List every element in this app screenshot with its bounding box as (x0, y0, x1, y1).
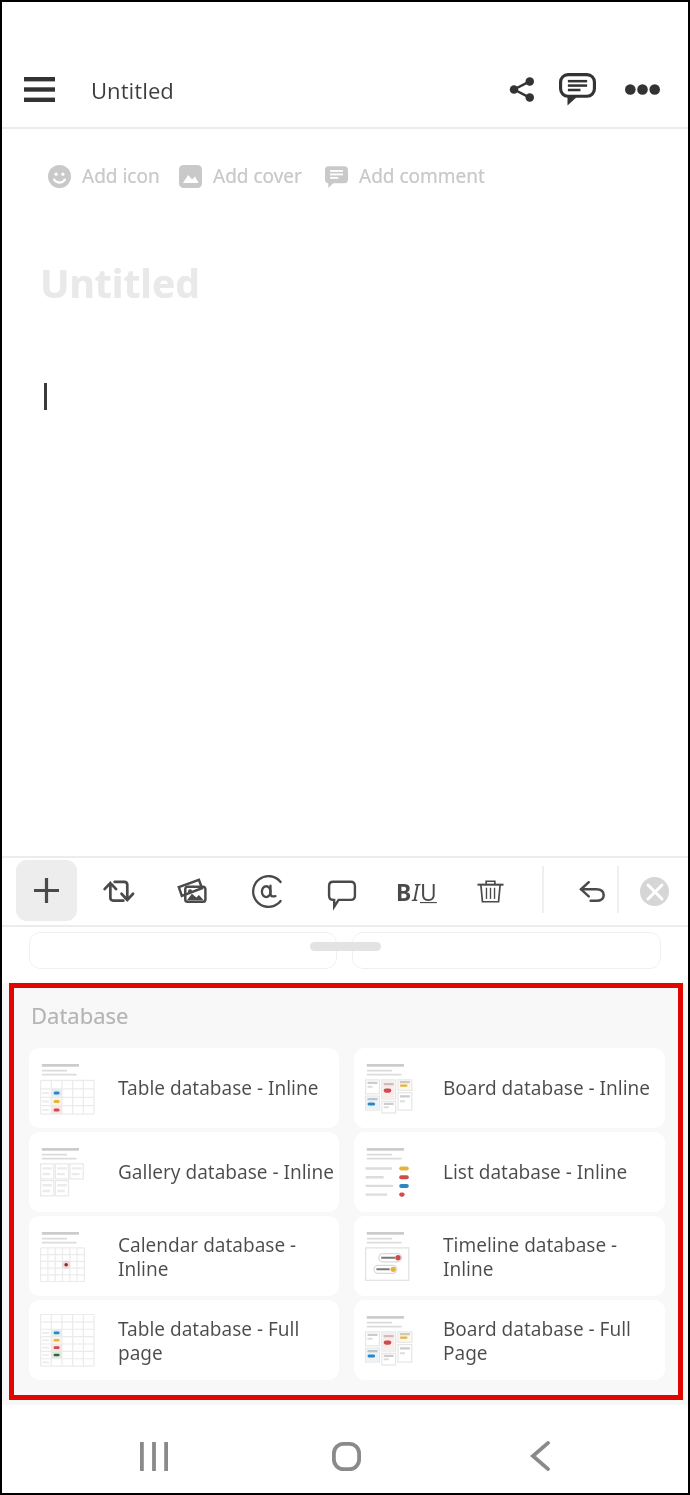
staticText: Calendar database - Inline (118, 1232, 337, 1281)
button[interactable]: Comments (549, 62, 605, 118)
button[interactable]: Add comment (325, 155, 485, 197)
staticText: Board database - Full Page (443, 1316, 663, 1365)
button[interactable]: Board database - Inline (354, 1048, 665, 1128)
button[interactable]: Home (312, 1434, 380, 1478)
button[interactable]: Delete (453, 858, 527, 925)
button[interactable]: Text format (379, 858, 453, 925)
button[interactable]: Undo (555, 858, 629, 925)
button[interactable]: List database - Inline (354, 1132, 665, 1212)
staticText: B (396, 876, 412, 907)
button[interactable]: Board database - Full Page (354, 1300, 665, 1380)
button[interactable]: Gallery database - Inline (29, 1132, 339, 1212)
button[interactable]: Recents (120, 1434, 188, 1478)
button[interactable]: Close (619, 858, 689, 925)
button[interactable]: Image (157, 858, 231, 925)
button[interactable]: Timeline database - Inline (354, 1216, 665, 1296)
button[interactable]: Add block (16, 860, 77, 921)
staticText: Add icon (82, 163, 160, 189)
button[interactable]: Add icon (48, 155, 160, 197)
staticText: Untitled (40, 256, 200, 309)
staticText: List database - Inline (443, 1159, 628, 1185)
staticText: Table database - Inline (118, 1075, 319, 1101)
button[interactable]: Share (493, 61, 549, 117)
staticText: Add comment (359, 163, 485, 189)
staticText: I (412, 876, 420, 907)
button[interactable]: Turn into (82, 858, 156, 925)
button[interactable]: Add cover (179, 155, 302, 197)
button[interactable]: Mention (231, 858, 305, 925)
button[interactable]: Menu (9, 59, 69, 119)
staticText: Timeline database - Inline (443, 1232, 663, 1281)
button[interactable]: Table database - Full page (29, 1300, 339, 1380)
button[interactable]: More options (614, 61, 670, 117)
staticText: Gallery database - Inline (118, 1159, 334, 1185)
button[interactable]: Back (506, 1434, 574, 1478)
staticText: U (420, 876, 437, 907)
staticText: Table database - Full page (118, 1316, 337, 1365)
button[interactable]: Calendar database - Inline (29, 1216, 339, 1296)
staticText: Database (31, 1000, 129, 1030)
staticText: Add cover (213, 163, 302, 189)
staticText: Board database - Inline (443, 1075, 651, 1101)
staticText: Untitled (91, 75, 174, 105)
button[interactable]: Table database - Inline (29, 1048, 339, 1128)
button[interactable]: Comment (305, 858, 379, 925)
